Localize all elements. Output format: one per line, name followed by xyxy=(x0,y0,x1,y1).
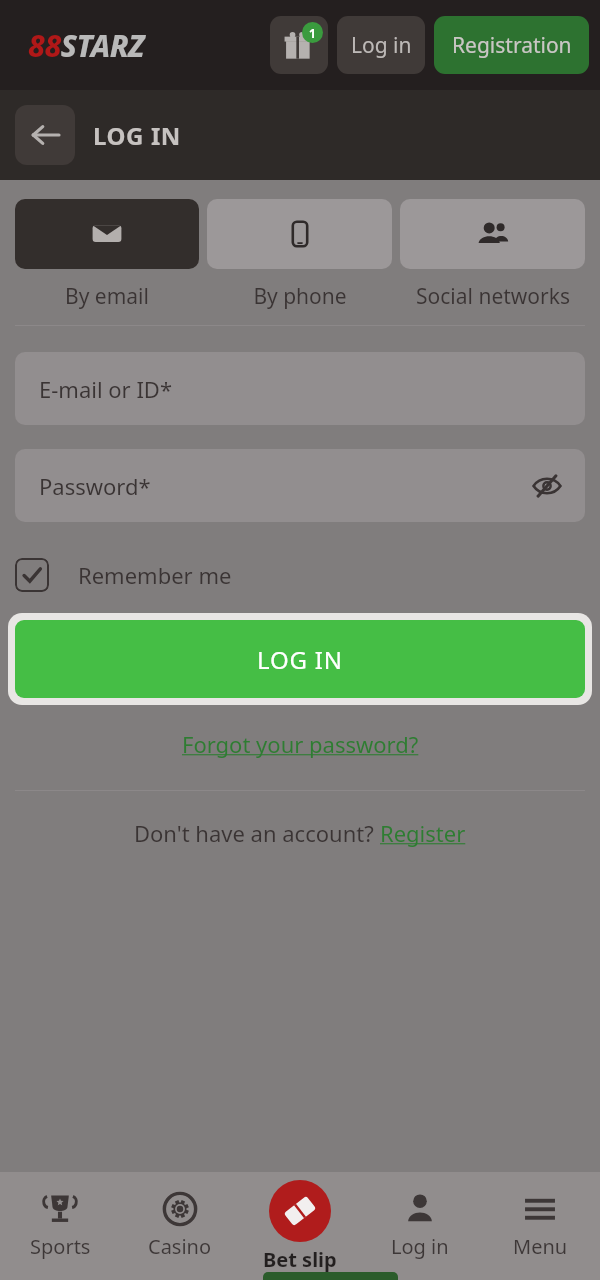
staticText: Register xyxy=(380,818,466,848)
staticText: Password* xyxy=(39,471,151,501)
staticText: Don't have an account? xyxy=(134,818,380,848)
staticText: 1 xyxy=(309,25,316,41)
staticText: By email xyxy=(65,282,149,311)
staticText: Casino xyxy=(148,1233,212,1260)
button[interactable]: Back xyxy=(15,105,75,165)
staticText: By phone xyxy=(253,282,347,311)
button[interactable]: Log in xyxy=(360,1172,480,1280)
button[interactable]: By phone xyxy=(207,199,392,311)
button[interactable]: Show password xyxy=(523,462,571,510)
staticText: Menu xyxy=(513,1233,568,1260)
button[interactable]: Casino xyxy=(120,1172,240,1280)
button[interactable]: Bet slip xyxy=(240,1172,360,1280)
staticText: Sports xyxy=(30,1233,91,1260)
staticText: Log in xyxy=(351,31,412,60)
button[interactable]: Social networks xyxy=(400,199,585,311)
staticText: Bet slip xyxy=(263,1246,337,1273)
staticText: Forgot your password? xyxy=(182,729,419,759)
button[interactable]: LOG IN xyxy=(15,620,585,698)
staticText: 88STARZ xyxy=(28,25,144,66)
staticText: Remember me xyxy=(78,560,232,590)
button[interactable]: Remember me xyxy=(15,553,232,597)
button[interactable]: E-mail or ID* xyxy=(15,352,585,425)
staticText: Log in xyxy=(391,1233,449,1260)
staticText: LOG IN xyxy=(93,119,181,152)
button[interactable]: By email xyxy=(15,199,199,311)
staticText: Registration xyxy=(452,31,572,60)
button[interactable]: Sports xyxy=(0,1172,120,1280)
button[interactable]: Password* xyxy=(15,449,585,522)
button[interactable]: Forgot your password? xyxy=(174,721,427,767)
staticText: E-mail or ID* xyxy=(39,374,173,404)
staticText: Social networks xyxy=(416,282,570,311)
button[interactable]: Bonuses xyxy=(270,16,328,74)
staticText: LOG IN xyxy=(257,643,343,676)
button[interactable]: Log in xyxy=(337,16,425,74)
button[interactable]: Registration xyxy=(434,16,589,74)
button[interactable]: Menu xyxy=(480,1172,600,1280)
button[interactable]: Register xyxy=(380,818,466,848)
